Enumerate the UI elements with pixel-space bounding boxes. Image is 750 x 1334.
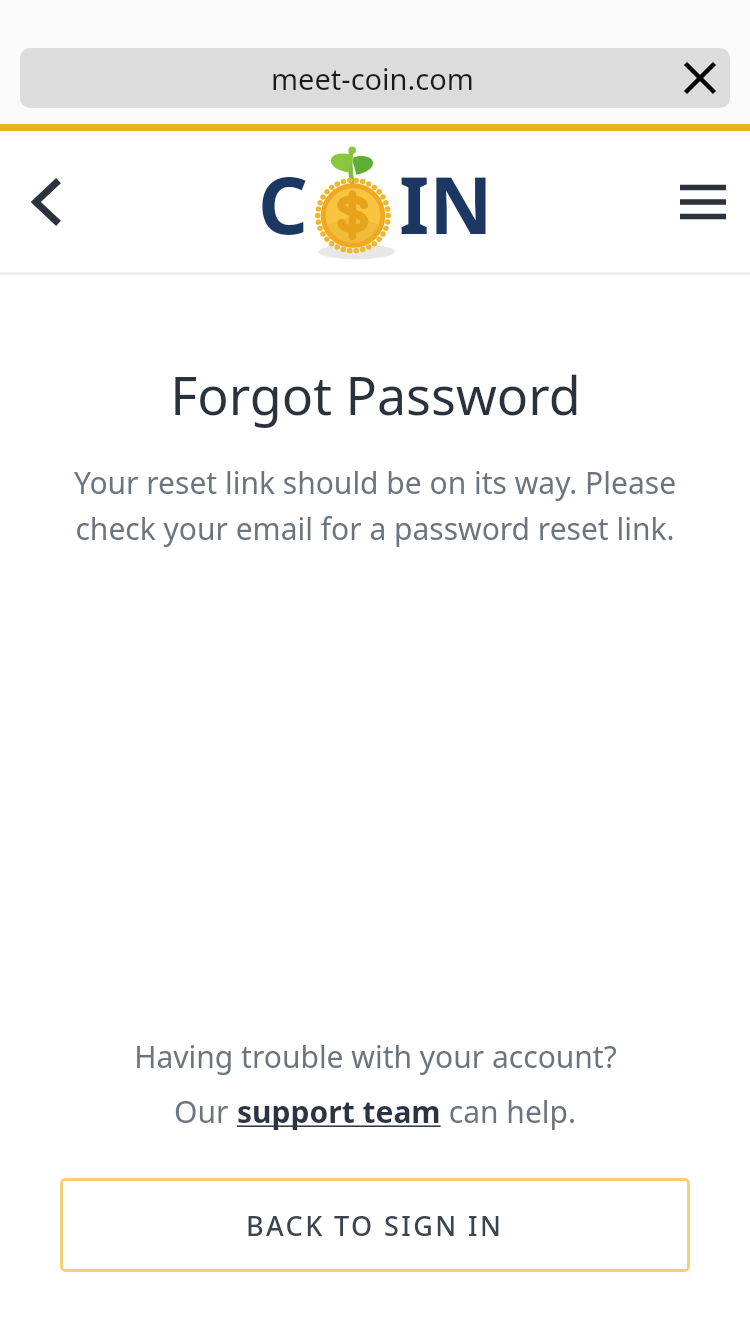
button[interactable]: BACK TO SIGN IN [60, 1178, 690, 1272]
button[interactable]: Back [14, 169, 80, 235]
staticText: can help. [441, 1091, 577, 1132]
button[interactable]: Close tab [670, 48, 730, 108]
staticText: meet-coin.com [271, 59, 474, 98]
staticText: Forgot Password [170, 359, 581, 430]
staticText: BACK TO SIGN IN [246, 1207, 504, 1244]
staticText: Having trouble with your account? [134, 1036, 617, 1077]
staticText: Our [174, 1091, 237, 1132]
staticText: IN [399, 151, 493, 257]
button[interactable]: meet-coin.com [20, 48, 730, 108]
staticText: support team [237, 1091, 441, 1132]
staticText: C [258, 151, 309, 257]
button[interactable]: support team [237, 1091, 441, 1132]
button[interactable]: Menu [668, 167, 738, 237]
staticText: Your reset link should be on its way. Pl… [28, 462, 722, 549]
button[interactable]: Coin home [258, 150, 493, 258]
